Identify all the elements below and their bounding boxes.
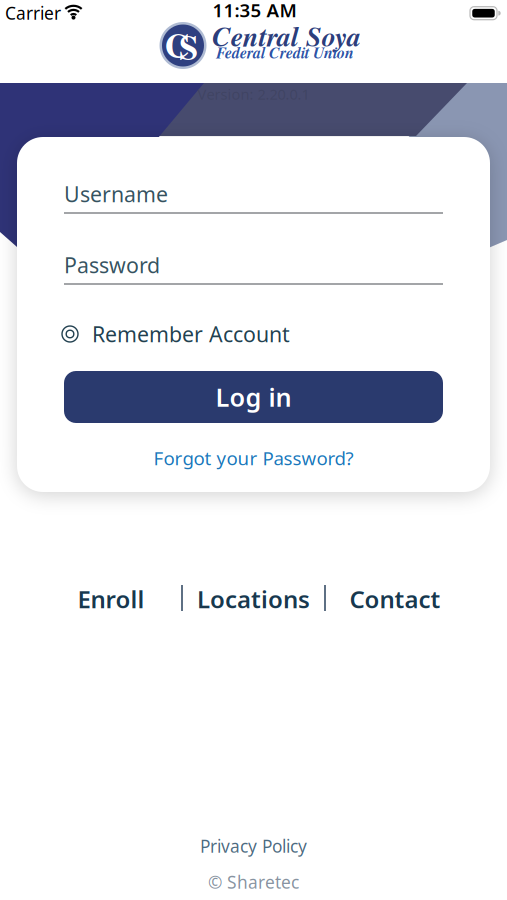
staticText: Locations (197, 583, 310, 615)
staticText: Password (64, 251, 160, 279)
staticText: Carrier (5, 1, 61, 24)
staticText: Enroll (77, 583, 144, 615)
button[interactable]: Locations (178, 582, 328, 616)
staticText: Log in (215, 380, 291, 414)
staticText: C (164, 19, 189, 70)
staticText: Forgot your Password? (153, 446, 353, 470)
staticText: S (179, 21, 198, 72)
staticText: Federal Credit Union (216, 41, 354, 64)
button[interactable]: Username (64, 170, 443, 220)
staticText: Remember Account (92, 320, 290, 348)
staticText: Version: 2.20.0.1 (197, 84, 309, 104)
button[interactable]: Enroll (61, 582, 161, 616)
button[interactable]: Password (64, 241, 443, 291)
staticText: © Sharetec (208, 870, 299, 893)
button[interactable]: Remember Account (64, 309, 443, 359)
staticText: Contact (349, 583, 440, 615)
staticText: Privacy Policy (200, 834, 307, 857)
button[interactable]: Contact (340, 582, 450, 616)
staticText: Central Soya (212, 16, 361, 56)
button[interactable]: Log in (64, 371, 443, 423)
button[interactable]: Privacy Policy (173, 832, 333, 860)
button[interactable]: Forgot your Password? (103, 443, 403, 473)
staticText: 11:35 AM (212, 0, 296, 22)
staticText: Username (64, 180, 168, 208)
